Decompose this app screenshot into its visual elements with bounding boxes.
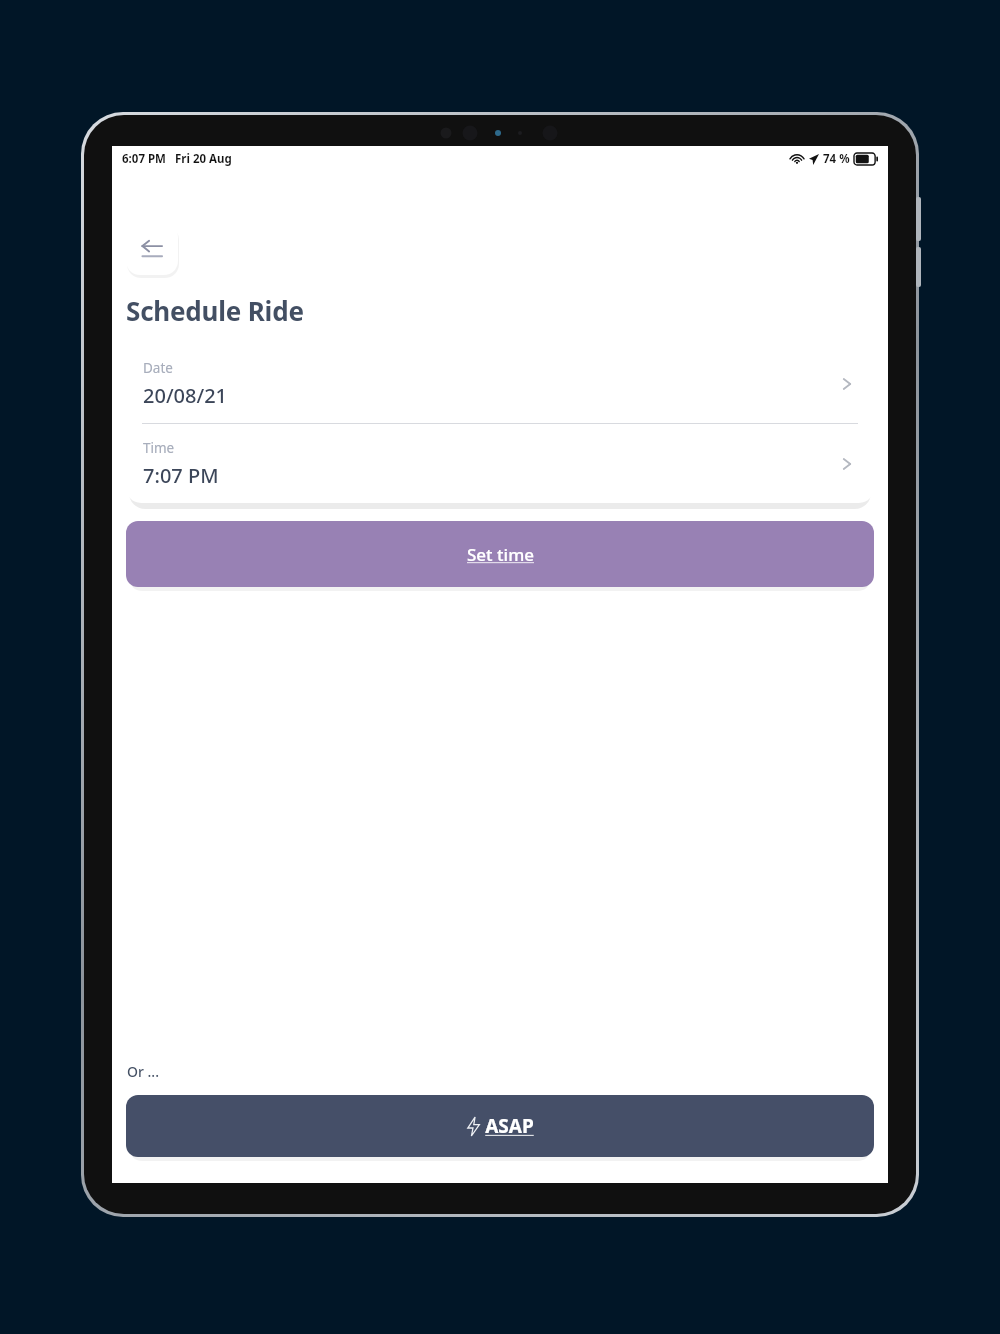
staticText: 74 % xyxy=(823,151,850,167)
staticText: Fri 20 Aug xyxy=(175,151,232,167)
button[interactable]: Set time xyxy=(126,521,874,587)
button[interactable]: Back xyxy=(126,223,178,275)
staticText: Schedule Ride xyxy=(126,293,304,328)
staticText: ASAP xyxy=(485,1113,534,1139)
button[interactable]: Time xyxy=(126,424,874,503)
staticText: Date xyxy=(143,359,173,377)
staticText: Time xyxy=(143,439,175,457)
button[interactable]: Date xyxy=(126,344,874,423)
staticText: Or ... xyxy=(127,1062,159,1081)
button[interactable]: ASAP xyxy=(126,1095,874,1157)
staticText: 7:07 PM xyxy=(143,462,219,489)
staticText: 6:07 PM xyxy=(122,151,166,167)
staticText: 20/08/21 xyxy=(143,382,228,409)
staticText: Set time xyxy=(467,543,534,566)
